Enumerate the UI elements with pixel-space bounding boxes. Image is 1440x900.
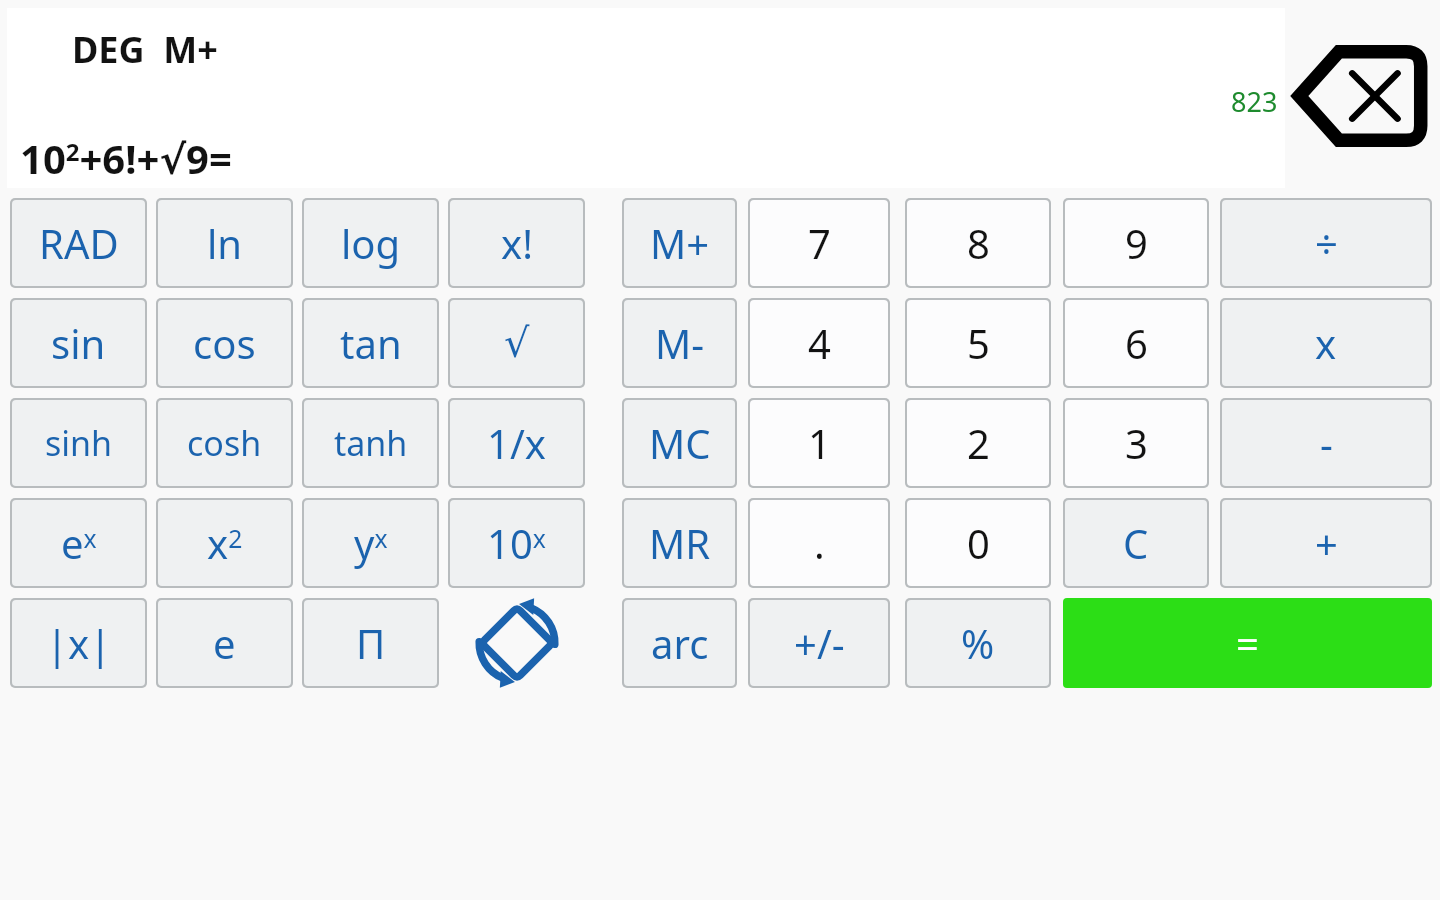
button[interactable]: 9 [1063, 198, 1209, 288]
button[interactable]: sin [10, 298, 147, 388]
button[interactable]: 10x [448, 498, 585, 588]
staticText: - [1320, 416, 1333, 470]
staticText: sinh [45, 420, 113, 466]
staticText: cosh [187, 420, 262, 466]
staticText: +/- [794, 616, 845, 670]
staticText: = [1236, 616, 1259, 670]
button[interactable]: + [1220, 498, 1432, 588]
staticText: MR [649, 516, 711, 570]
button[interactable]: √ [448, 298, 585, 388]
staticText: 1 [808, 416, 831, 470]
button[interactable]: sinh [10, 398, 147, 488]
staticText: arc [651, 616, 709, 670]
staticText: M- [655, 316, 705, 370]
staticText: C [1123, 516, 1149, 570]
button[interactable]: - [1220, 398, 1432, 488]
button[interactable]: C [1063, 498, 1209, 588]
button[interactable]: e [156, 598, 293, 688]
staticText: ÷ [1315, 216, 1338, 270]
staticText: √ [504, 320, 530, 367]
staticText: cos [193, 316, 256, 370]
button[interactable]: 3 [1063, 398, 1209, 488]
button[interactable]: 0 [905, 498, 1051, 588]
button[interactable]: 6 [1063, 298, 1209, 388]
staticText: 4 [808, 316, 831, 370]
button[interactable]: yx [302, 498, 439, 588]
button[interactable]: arc [622, 598, 737, 688]
staticText: RAD [39, 216, 119, 270]
button[interactable]: ex [10, 498, 147, 588]
button[interactable]: 7 [748, 198, 890, 288]
staticText: 3 [1125, 416, 1148, 470]
staticText: |x| [46, 616, 112, 670]
button[interactable]: cos [156, 298, 293, 388]
button[interactable]: M- [622, 298, 737, 388]
button[interactable]: 4 [748, 298, 890, 388]
button[interactable]: 2 [905, 398, 1051, 488]
staticText: MC [649, 416, 711, 470]
button[interactable]: ÷ [1220, 198, 1432, 288]
staticText: 823 [1231, 83, 1278, 120]
staticText: DEG M+ [72, 25, 218, 74]
staticText: tanh [334, 420, 408, 466]
button[interactable]: cosh [156, 398, 293, 488]
staticText: log [341, 216, 401, 270]
button[interactable]: Rotate screen [448, 598, 585, 688]
staticText: sin [51, 316, 106, 370]
staticText: 1/x [487, 416, 546, 470]
button[interactable]: RAD [10, 198, 147, 288]
button[interactable]: tanh [302, 398, 439, 488]
button[interactable]: 8 [905, 198, 1051, 288]
staticText: x [1315, 316, 1337, 370]
button[interactable]: +/- [748, 598, 890, 688]
button[interactable]: |x| [10, 598, 147, 688]
button[interactable]: 1 [748, 398, 890, 488]
staticText: ex [61, 516, 97, 570]
button[interactable]: % [905, 598, 1051, 688]
staticText: П [356, 616, 386, 670]
staticText: 8 [967, 216, 990, 270]
button[interactable]: = [1063, 598, 1432, 688]
staticText: . [814, 516, 825, 570]
button[interactable]: tan [302, 298, 439, 388]
staticText: 7 [808, 216, 831, 270]
button[interactable]: 1/x [448, 398, 585, 488]
staticText: 6 [1125, 316, 1148, 370]
button[interactable]: MR [622, 498, 737, 588]
staticText: x! [501, 216, 533, 270]
button[interactable]: MC [622, 398, 737, 488]
staticText: yx [354, 516, 388, 570]
button[interactable]: . [748, 498, 890, 588]
button[interactable]: x [1220, 298, 1432, 388]
staticText: 5 [967, 316, 990, 370]
staticText: 2 [967, 416, 990, 470]
button[interactable]: M+ [622, 198, 737, 288]
staticText: ln [207, 216, 243, 270]
staticText: 0 [967, 516, 990, 570]
staticText: x2 [207, 516, 243, 570]
button[interactable]: ln [156, 198, 293, 288]
button[interactable]: x2 [156, 498, 293, 588]
button[interactable]: log [302, 198, 439, 288]
staticText: + [1315, 516, 1338, 570]
staticText: 9 [1125, 216, 1148, 270]
staticText: 102+6!+√9= [20, 131, 232, 185]
staticText: M+ [650, 216, 710, 270]
button[interactable]: Backspace [1294, 42, 1426, 150]
staticText: e [213, 616, 236, 670]
staticText: tan [340, 316, 402, 370]
button[interactable]: П [302, 598, 439, 688]
button[interactable]: 5 [905, 298, 1051, 388]
button[interactable]: x! [448, 198, 585, 288]
staticText: % [961, 616, 995, 670]
staticText: 10x [487, 516, 546, 570]
